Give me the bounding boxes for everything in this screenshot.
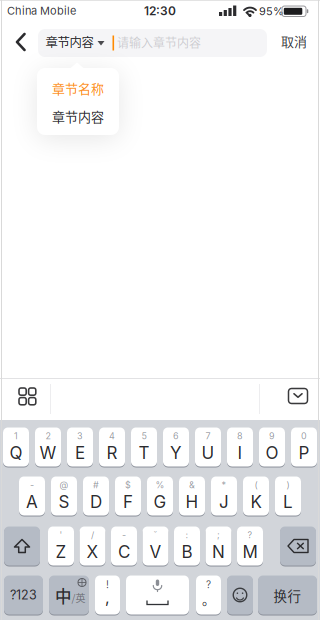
- button[interactable]: E: [67, 427, 93, 467]
- staticText: /英: [71, 590, 85, 605]
- staticText: 8: [237, 430, 243, 441]
- staticText: 7: [205, 430, 210, 441]
- staticText: 0: [301, 430, 307, 441]
- button[interactable]: X: [79, 526, 105, 566]
- button[interactable]: Delete: [280, 526, 316, 566]
- staticText: ;: [217, 529, 220, 540]
- staticText: R: [106, 442, 117, 463]
- staticText: -: [122, 529, 126, 540]
- staticText: ): [286, 479, 289, 490]
- staticText: V: [149, 541, 161, 562]
- button[interactable]: Space: [126, 575, 189, 615]
- staticText: Z: [55, 541, 66, 562]
- button[interactable]: 请输入章节内容: [38, 29, 267, 57]
- button[interactable]: 。: [196, 575, 221, 615]
- staticText: Q: [9, 442, 22, 463]
- button[interactable]: 换行: [258, 575, 317, 615]
- button[interactable]: 章节名称: [37, 73, 119, 103]
- staticText: 。: [202, 589, 215, 608]
- staticText: 章节内容: [45, 32, 93, 50]
- button[interactable]: A: [19, 476, 45, 516]
- staticText: /: [91, 529, 94, 540]
- button[interactable]: Shift: [4, 526, 40, 566]
- staticText: N: [212, 541, 225, 562]
- button[interactable]: 更多: [9, 378, 46, 415]
- button[interactable]: 筛选: [38, 29, 108, 57]
- button[interactable]: S: [51, 476, 77, 516]
- staticText: 1: [14, 430, 18, 441]
- staticText: 5: [141, 430, 146, 441]
- staticText: %: [155, 479, 164, 490]
- button[interactable]: 中英切换: [49, 575, 89, 615]
- button[interactable]: N: [205, 526, 231, 566]
- staticText: T: [138, 442, 149, 463]
- staticText: &: [189, 479, 195, 490]
- staticText: 取消: [281, 31, 307, 50]
- button[interactable]: G: [147, 476, 173, 516]
- staticText: 95%: [259, 4, 284, 18]
- staticText: G: [153, 491, 166, 512]
- button[interactable]: I: [227, 427, 253, 467]
- button[interactable]: M: [237, 526, 263, 566]
- button[interactable]: K: [243, 476, 269, 516]
- button[interactable]: R: [99, 427, 125, 467]
- button[interactable]: L: [275, 476, 301, 516]
- button[interactable]: V: [142, 526, 168, 566]
- button[interactable]: U: [195, 427, 221, 467]
- staticText: E: [75, 442, 85, 463]
- staticText: ': [59, 529, 62, 540]
- button[interactable]: J: [211, 476, 237, 516]
- staticText: ?: [206, 578, 211, 591]
- button[interactable]: H: [179, 476, 205, 516]
- staticText: !: [106, 578, 109, 591]
- button[interactable]: O: [259, 427, 285, 467]
- button[interactable]: Q: [3, 427, 29, 467]
- staticText: 章节名称: [52, 79, 104, 97]
- staticText: ,: [105, 587, 110, 607]
- button[interactable]: B: [174, 526, 200, 566]
- staticText: D: [90, 491, 102, 512]
- staticText: 换行: [273, 585, 301, 605]
- button[interactable]: 表情: [227, 575, 253, 615]
- button[interactable]: W: [35, 427, 61, 467]
- staticText: 9: [269, 430, 275, 441]
- staticText: F: [123, 491, 133, 512]
- button[interactable]: 章节内容: [37, 101, 119, 131]
- staticText: X: [86, 541, 98, 562]
- staticText: ˇ: [153, 529, 157, 540]
- staticText: #: [93, 479, 99, 490]
- staticText: S: [58, 491, 69, 512]
- staticText: P: [298, 442, 309, 463]
- staticText: 章节内容: [52, 107, 104, 125]
- staticText: *: [221, 479, 226, 490]
- staticText: J: [219, 491, 229, 512]
- staticText: 中: [55, 583, 72, 607]
- staticText: C: [118, 541, 130, 562]
- button[interactable]: P: [291, 427, 317, 467]
- staticText: ?: [247, 529, 252, 540]
- staticText: $: [125, 479, 131, 490]
- button[interactable]: F: [115, 476, 141, 516]
- staticText: U: [201, 442, 214, 463]
- staticText: 请输入章节内容: [117, 33, 201, 51]
- button[interactable]: Y: [163, 427, 189, 467]
- button[interactable]: T: [131, 427, 157, 467]
- button[interactable]: Z: [48, 526, 74, 566]
- button[interactable]: ,: [95, 575, 120, 615]
- staticText: (: [254, 479, 257, 490]
- staticText: :: [185, 529, 188, 540]
- staticText: 12:30: [144, 3, 176, 18]
- button[interactable]: ?123: [4, 575, 43, 615]
- staticText: ?123: [10, 587, 37, 603]
- staticText: @: [59, 479, 68, 490]
- staticText: H: [185, 491, 198, 512]
- staticText: M: [242, 541, 257, 562]
- staticText: W: [39, 442, 56, 463]
- staticText: -: [30, 479, 34, 490]
- button[interactable]: 收起键盘: [278, 378, 317, 413]
- staticText: I: [237, 442, 242, 463]
- button[interactable]: C: [111, 526, 137, 566]
- button[interactable]: 取消: [275, 23, 313, 58]
- button[interactable]: Back: [8, 25, 34, 59]
- button[interactable]: D: [83, 476, 109, 516]
